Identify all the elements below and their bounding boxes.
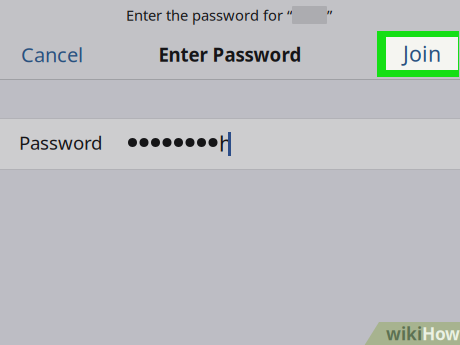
button[interactable]: Join [386,37,458,70]
staticText: How [422,322,460,345]
staticText: Enter Password [158,42,301,67]
staticText: wiki [386,322,422,345]
staticText: Enter the password for “ [126,5,292,25]
staticText: Password [19,130,102,155]
button[interactable]: Password [0,119,460,169]
staticText: Cancel [21,41,83,68]
staticText: h [219,129,232,157]
staticText: ” [327,5,332,25]
button[interactable]: Cancel [0,28,101,81]
staticText: Join [403,39,441,68]
